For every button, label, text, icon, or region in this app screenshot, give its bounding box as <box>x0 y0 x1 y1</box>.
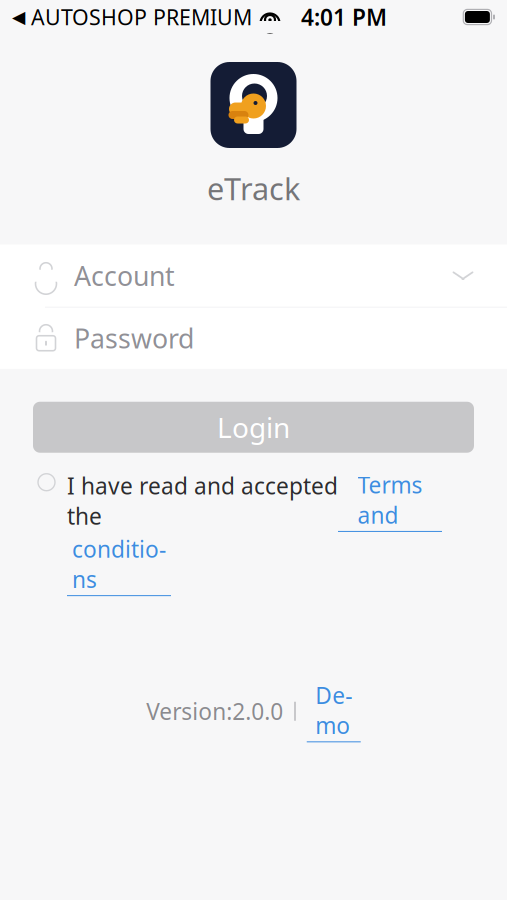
button[interactable]: Demo <box>307 680 361 742</box>
button[interactable]: Account <box>0 245 507 307</box>
staticText: Password <box>74 320 194 356</box>
staticText: I have read and accepted the <box>67 471 338 531</box>
button[interactable]: I have read and accepted the <box>38 470 469 596</box>
button[interactable]: Login <box>33 402 474 453</box>
staticText: Demo <box>315 680 352 740</box>
staticText: Terms and <box>357 470 422 530</box>
button[interactable]: Password <box>0 308 507 369</box>
staticText: eTrack <box>207 168 300 209</box>
staticText: Version:2.0.0 <box>146 696 283 726</box>
staticText: Account <box>74 258 175 293</box>
staticText: Login <box>217 409 290 446</box>
staticText: 4:01 PM <box>301 2 387 32</box>
staticText: ◀ <box>12 7 25 27</box>
staticText: conditions <box>72 534 166 594</box>
staticText: AUTOSHOP PREMIUM <box>25 3 252 31</box>
